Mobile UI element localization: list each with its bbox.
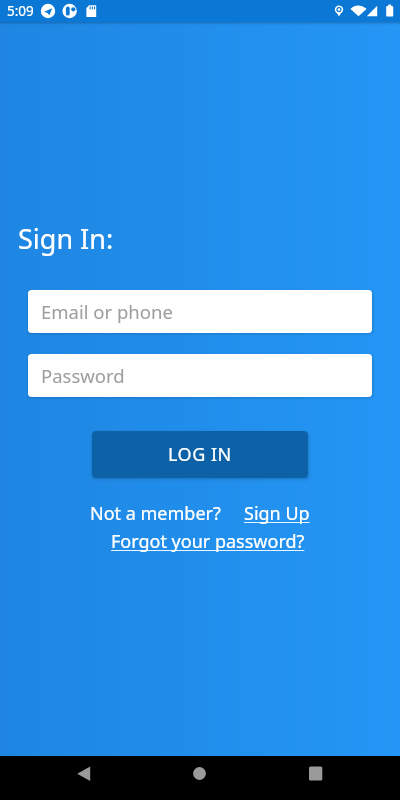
button[interactable]: Email or phone (28, 290, 372, 333)
staticText: Password (41, 363, 125, 388)
staticText: Email or phone (41, 299, 173, 324)
staticText: Sign In: (18, 220, 114, 257)
button[interactable]: LOG IN (92, 431, 308, 478)
button[interactable] (0, 756, 134, 800)
button[interactable]: Forgot your password? (111, 529, 305, 554)
staticText: Not a member? (90, 501, 221, 526)
staticText: 5:09 (7, 2, 34, 20)
button[interactable]: Sign Up (244, 501, 310, 526)
button[interactable] (134, 756, 267, 800)
staticText: LOG IN (168, 442, 232, 467)
button[interactable] (267, 756, 400, 800)
button[interactable]: Password (28, 354, 372, 397)
